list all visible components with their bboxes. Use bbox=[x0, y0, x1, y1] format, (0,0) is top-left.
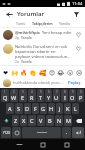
button[interactable]: 7 bbox=[53, 89, 60, 102]
button[interactable]: 😂 bbox=[57, 68, 65, 76]
button[interactable]: Symbols bbox=[1, 127, 11, 138]
button[interactable]: N bbox=[55, 115, 63, 126]
staticText: Yorumlar bbox=[17, 10, 45, 18]
button[interactable]: Z bbox=[12, 115, 19, 126]
staticText: Yanıtla bbox=[59, 21, 70, 26]
staticText: T bbox=[39, 94, 43, 101]
button[interactable]: A bbox=[6, 103, 14, 114]
button[interactable]: Shift bbox=[1, 115, 11, 126]
button[interactable]: @mihirliftpic bbox=[0, 28, 85, 42]
button[interactable]: 😮 bbox=[66, 68, 74, 76]
button[interactable]: Emoji bbox=[12, 127, 21, 138]
staticText: 🙌 bbox=[11, 69, 19, 76]
staticText: K bbox=[66, 105, 70, 112]
button[interactable]: 3 bbox=[19, 89, 27, 102]
staticText: R bbox=[30, 94, 34, 101]
button[interactable]: F bbox=[32, 103, 39, 114]
button[interactable]: 😢 bbox=[75, 68, 83, 76]
staticText: Q bbox=[3, 94, 8, 101]
button[interactable]: V bbox=[37, 115, 45, 126]
button[interactable]: 👏 bbox=[29, 68, 37, 76]
staticText: S bbox=[17, 105, 21, 112]
button[interactable]: 🔥 bbox=[20, 68, 28, 76]
staticText: 🔥 bbox=[20, 69, 28, 76]
staticText: Takipçilerim bbox=[32, 21, 53, 26]
button[interactable]: Filter bbox=[71, 9, 81, 19]
staticText: Yanıtla bbox=[21, 60, 32, 63]
button[interactable]: Like bbox=[74, 44, 82, 52]
button[interactable]: ❤️ bbox=[2, 68, 10, 76]
staticText: M bbox=[66, 117, 71, 124]
staticText: 8 bbox=[64, 90, 66, 94]
staticText: L bbox=[74, 105, 77, 112]
button[interactable]: hulihakkinda olarak yorum ek... bbox=[13, 80, 65, 85]
button[interactable]: 🥰 bbox=[39, 68, 47, 76]
button[interactable]: Yanıtla bbox=[21, 36, 32, 40]
button[interactable]: Backspace bbox=[73, 115, 84, 126]
staticText: Yeni hesap edin bbox=[42, 30, 72, 35]
button[interactable]: M bbox=[64, 115, 72, 126]
staticText: 2 bbox=[13, 90, 15, 94]
button[interactable]: Space bbox=[22, 127, 61, 138]
button[interactable]: Back bbox=[15, 140, 24, 149]
staticText: D bbox=[25, 105, 30, 112]
staticText: 🥰 bbox=[39, 69, 47, 76]
staticText: U bbox=[54, 94, 59, 101]
staticText: 😍 bbox=[49, 69, 56, 76]
staticText: V bbox=[39, 117, 43, 124]
staticText: B bbox=[48, 117, 52, 124]
button[interactable]: 😍 bbox=[48, 68, 56, 76]
button[interactable]: 6 bbox=[45, 89, 52, 102]
staticText: N bbox=[57, 117, 62, 124]
button[interactable]: Recents bbox=[62, 140, 71, 149]
staticText: 3 bbox=[22, 90, 24, 94]
button[interactable]: 0 bbox=[77, 89, 84, 102]
staticText: F bbox=[34, 105, 37, 112]
staticText: Nuhbitlis Duruslarini en cok kapanistan … bbox=[15, 44, 72, 59]
button[interactable]: 8 bbox=[61, 89, 68, 102]
button[interactable]: Yanıtla bbox=[21, 60, 32, 63]
button[interactable]: K bbox=[64, 103, 71, 114]
button[interactable]: H bbox=[48, 103, 55, 114]
button[interactable]: . bbox=[62, 127, 71, 138]
button[interactable]: Like bbox=[74, 30, 82, 38]
button[interactable]: Back bbox=[4, 9, 14, 19]
staticText: 😂 bbox=[57, 69, 65, 76]
button[interactable]: 1 bbox=[1, 89, 9, 102]
button[interactable]: 🙌 bbox=[11, 68, 19, 76]
button[interactable]: Takipçilerim bbox=[32, 21, 53, 26]
staticText: @mihirliftpic bbox=[15, 30, 40, 35]
staticText: 7 bbox=[56, 90, 58, 94]
button[interactable]: D bbox=[24, 103, 31, 114]
staticText: 5 bbox=[40, 90, 42, 94]
button[interactable]: Tümü bbox=[16, 21, 26, 26]
button[interactable]: S bbox=[15, 103, 23, 114]
staticText: 1 bbox=[4, 90, 6, 94]
button[interactable]: X bbox=[20, 115, 27, 126]
button[interactable]: Nuhbitlis Duruslarini en cok kapanistan … bbox=[0, 42, 85, 65]
button[interactable]: 2 bbox=[10, 89, 18, 102]
staticText: O bbox=[70, 94, 75, 101]
button[interactable]: Enter bbox=[72, 127, 84, 138]
staticText: Yanıtla bbox=[21, 36, 32, 40]
button[interactable]: B bbox=[46, 115, 54, 126]
button[interactable]: Yanıtla bbox=[59, 21, 70, 26]
staticText: E bbox=[21, 94, 25, 101]
button[interactable]: L bbox=[72, 103, 79, 114]
button[interactable]: C bbox=[28, 115, 36, 126]
staticText: A bbox=[8, 105, 12, 112]
button[interactable]: Paylaş bbox=[67, 80, 82, 85]
button[interactable]: J bbox=[56, 103, 63, 114]
staticText: . bbox=[66, 129, 68, 136]
staticText: H bbox=[49, 105, 54, 112]
button[interactable]: 4 bbox=[28, 89, 36, 102]
staticText: Y bbox=[47, 94, 51, 101]
staticText: Z bbox=[14, 117, 18, 124]
staticText: W bbox=[11, 94, 17, 101]
staticText: 9 bbox=[72, 90, 74, 94]
button[interactable]: 5 bbox=[37, 89, 44, 102]
button[interactable]: G bbox=[40, 103, 47, 114]
button[interactable]: Home bbox=[38, 140, 47, 149]
staticText: 6 bbox=[48, 90, 50, 94]
button[interactable]: 9 bbox=[69, 89, 76, 102]
